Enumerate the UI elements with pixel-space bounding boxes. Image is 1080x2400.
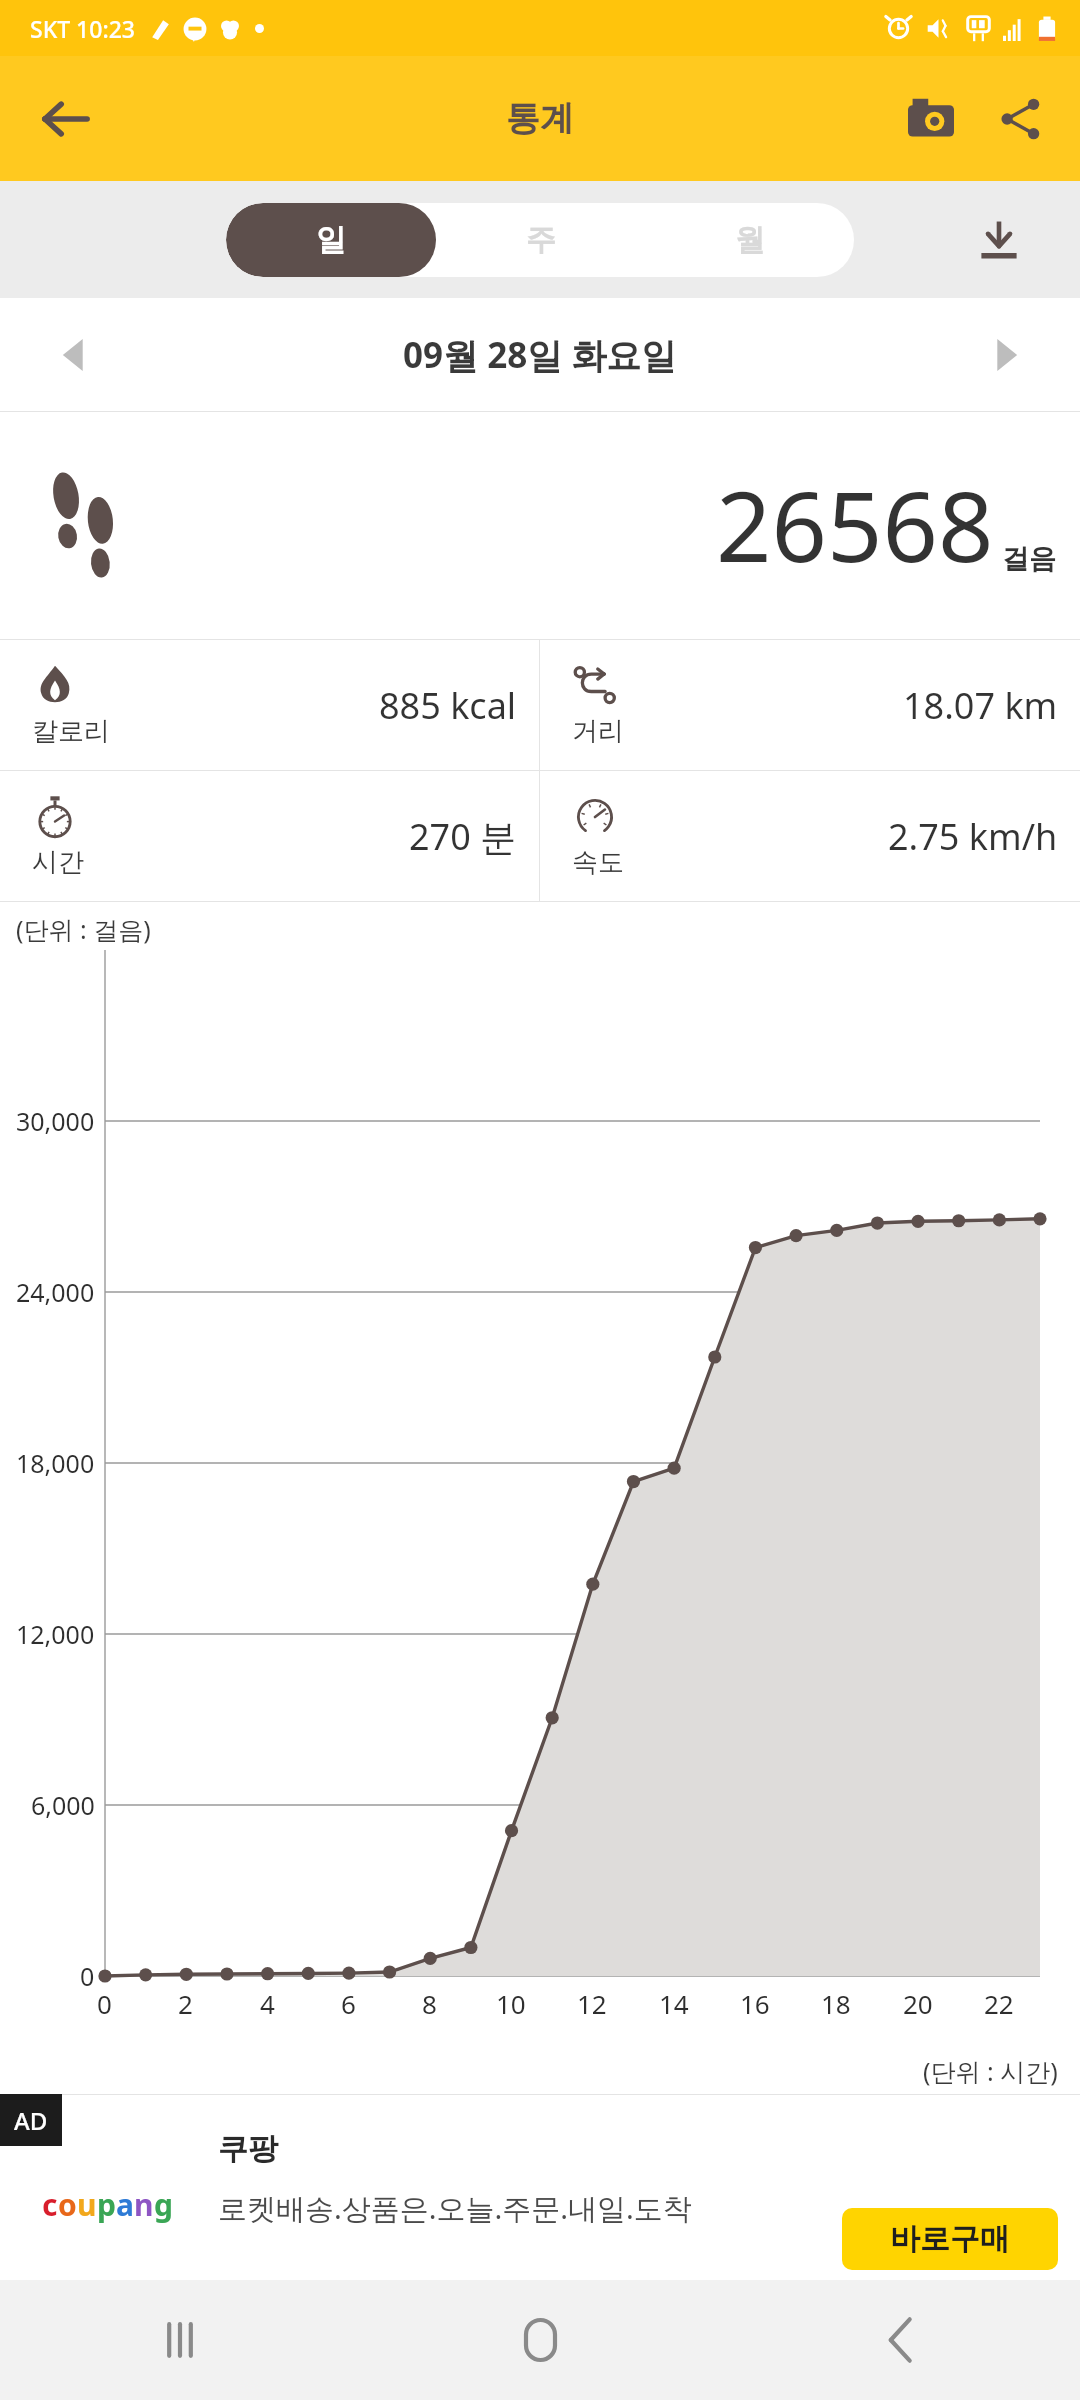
staticText: 주 [526, 221, 556, 259]
staticText: 20 [903, 1986, 933, 2021]
staticText: 거리 [572, 715, 624, 748]
staticText: c [42, 2184, 58, 2225]
staticText: 속도 [572, 846, 624, 879]
button[interactable]: 시간 [0, 771, 539, 901]
button[interactable]: 바로구매 [842, 2208, 1058, 2270]
staticText: 칼로리 [32, 715, 110, 748]
staticText: 12,000 [16, 1617, 95, 1651]
staticText: 09월 28일 화요일 [403, 331, 677, 379]
staticText: 0 [80, 1959, 95, 1993]
staticText: 바로구매 [890, 2220, 1010, 2258]
button[interactable]: 거리 [540, 640, 1080, 770]
staticText: 16 [740, 1986, 770, 2021]
staticText: 6,000 [31, 1788, 95, 1822]
button[interactable]: 속도 [540, 771, 1080, 901]
button[interactable]: Recent apps [0, 2280, 360, 2400]
staticText: (단위 : 시간) [923, 2054, 1058, 2088]
staticText: 걸음 [1002, 542, 1056, 576]
staticText: AD [14, 2104, 48, 2137]
button[interactable]: 주 [436, 203, 645, 277]
staticText: 4 [260, 1986, 275, 2021]
staticText: a [116, 2184, 134, 2225]
staticText: 쿠팡 [218, 2130, 278, 2168]
staticText: 18.07 km [903, 681, 1058, 730]
staticText: p [97, 2184, 116, 2225]
staticText: 10 [496, 1986, 526, 2021]
staticText: o [58, 2184, 77, 2225]
button[interactable]: 월 [645, 203, 854, 277]
button[interactable]: 칼로리 [0, 640, 539, 770]
button[interactable]: Previous day [38, 318, 112, 392]
staticText: 2 [178, 1986, 193, 2021]
staticText: 30,000 [16, 1104, 95, 1138]
staticText: 885 kcal [379, 681, 517, 730]
staticText: SKT 10:23 [30, 13, 135, 44]
button[interactable]: Download [964, 205, 1034, 275]
staticText: g [154, 2184, 173, 2225]
staticText: 270 분 [409, 812, 517, 861]
staticText: 로켓배송.상품은.오늘.주문.내일.도착 [218, 2188, 692, 2228]
staticText: 2.75 km/h [888, 812, 1058, 861]
staticText: 월 [735, 221, 765, 259]
staticText: 14 [659, 1986, 689, 2021]
staticText: 통계 [506, 97, 574, 140]
button[interactable]: Home [360, 2280, 720, 2400]
button[interactable]: Share [980, 78, 1062, 160]
staticText: 18,000 [16, 1446, 95, 1480]
staticText: 22 [984, 1986, 1014, 2021]
button[interactable]: 일 [226, 203, 436, 277]
staticText: 6 [341, 1986, 356, 2021]
staticText: 24,000 [16, 1275, 95, 1309]
staticText: 일 [316, 221, 346, 259]
staticText: 18 [821, 1986, 851, 2021]
staticText: u [77, 2184, 97, 2225]
staticText: 26568 [716, 458, 994, 590]
button[interactable]: Camera [890, 78, 972, 160]
button[interactable]: Next day [968, 318, 1042, 392]
button[interactable]: Back [720, 2280, 1080, 2400]
staticText: 시간 [32, 846, 84, 879]
staticText: (단위 : 걸음) [16, 912, 151, 946]
staticText: 8 [422, 1986, 437, 2021]
staticText: n [134, 2184, 154, 2225]
staticText: 12 [577, 1986, 607, 2021]
staticText: 0 [97, 1986, 112, 2021]
button[interactable]: Back [26, 79, 106, 159]
